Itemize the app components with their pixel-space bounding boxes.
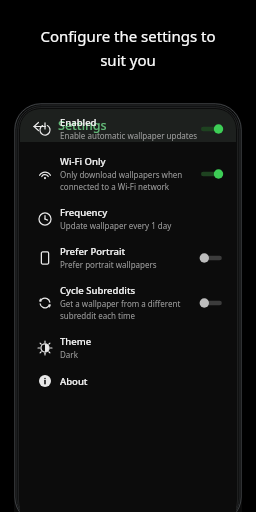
button[interactable]: About [20,367,236,395]
button[interactable]: Theme [20,328,236,367]
staticText: Get a wallpaper from a different [60,298,181,309]
staticText: Configure the settings to [40,26,216,46]
button[interactable]: Wi-Fi Only [20,148,236,199]
staticText: Prefer Portrait [60,245,126,258]
button[interactable]: Toggle Wi-Fi Only [200,166,226,182]
button[interactable]: Toggle Cycle Subreddits [200,295,226,311]
staticText: About [60,375,88,388]
staticText: Theme [60,335,92,348]
staticText: suit you [100,50,156,70]
staticText: Only download wallpapers when [60,169,183,180]
staticText: connected to a Wi-Fi network [60,181,170,192]
staticText: Enable automatic wallpaper updates [60,130,198,141]
button[interactable]: Frequency [20,199,236,238]
staticText: 10:00 [27,113,47,123]
staticText: Cycle Subreddits [60,284,136,297]
button[interactable]: Prefer Portrait [20,238,236,277]
button[interactable]: Enabled [20,109,236,148]
staticText: Settings [58,117,107,134]
button[interactable]: Toggle Prefer Portrait [200,250,226,266]
staticText: Frequency [60,206,108,219]
staticText: Wi-Fi Only [60,155,106,168]
staticText: Dark [60,349,78,360]
button[interactable]: Back [26,113,52,139]
button[interactable]: Cycle Subreddits [20,277,236,328]
staticText: Update wallpaper every 1 day [60,220,172,231]
staticText: Prefer portrait wallpapers [60,259,157,270]
button[interactable]: Toggle Enabled [200,121,226,137]
staticText: subreddit each time [60,310,136,321]
staticText: Enabled [60,116,97,129]
